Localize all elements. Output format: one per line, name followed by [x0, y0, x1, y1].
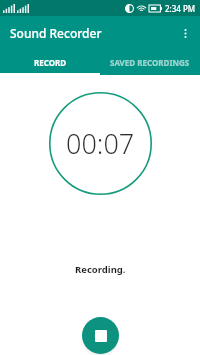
staticText: RECORD [34, 57, 67, 68]
button[interactable]: More options [170, 18, 200, 48]
button[interactable]: SAVED RECORDINGS [100, 49, 200, 75]
staticText: SAVED RECORDINGS [110, 57, 190, 68]
staticText: Recording. [75, 263, 126, 276]
button[interactable]: RECORD [0, 49, 100, 75]
staticText: Sound Recorder [10, 25, 102, 41]
staticText: 2:34 PM [165, 3, 196, 14]
staticText: 00:07 [66, 125, 135, 162]
button[interactable]: Stop recording [82, 317, 119, 354]
